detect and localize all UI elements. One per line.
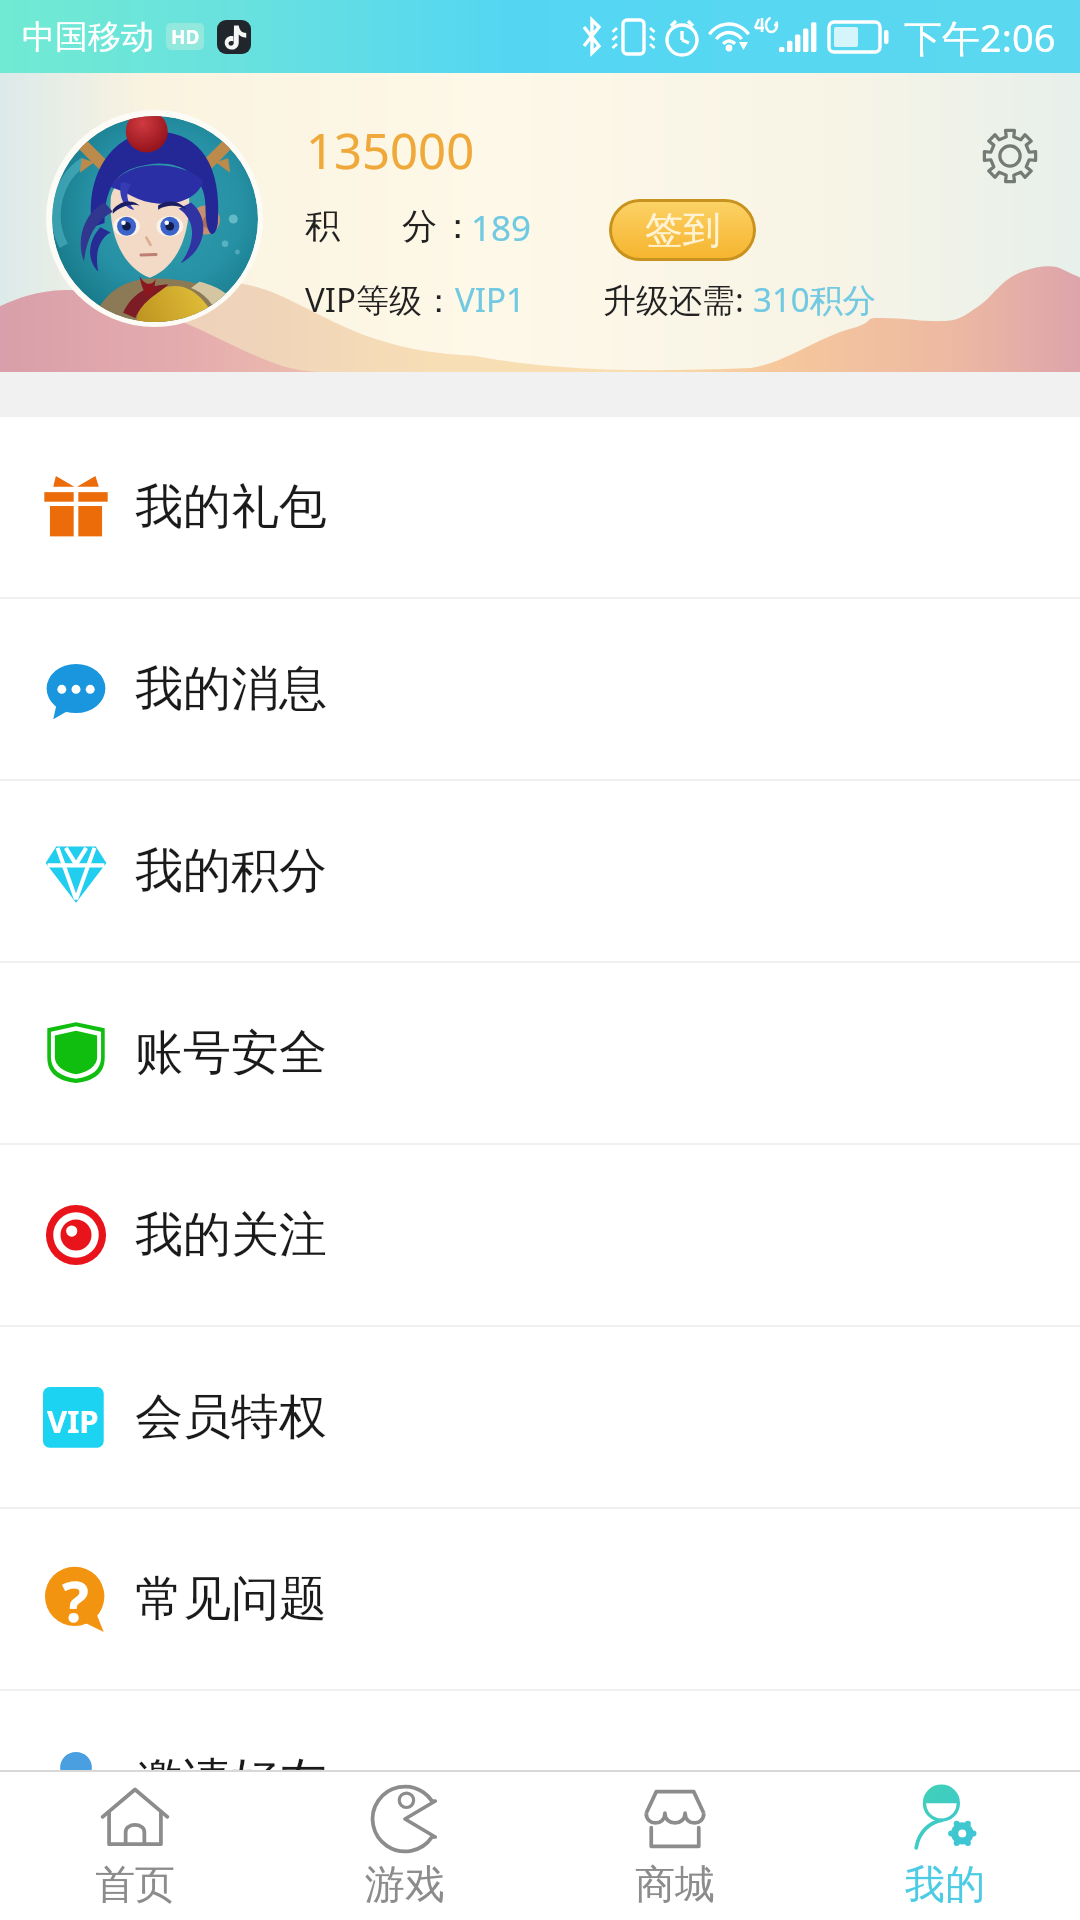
staticText: 下午2:06 <box>904 11 1056 63</box>
button[interactable]: 账号安全 <box>0 963 1080 1143</box>
button[interactable]: ? <box>0 1509 1080 1689</box>
staticText: HD <box>171 24 200 50</box>
staticText: VIP1 <box>455 277 525 322</box>
staticText: 商城 <box>635 1859 715 1909</box>
button[interactable]: 首页 <box>0 1772 270 1920</box>
button[interactable]: Avatar <box>46 110 263 327</box>
staticText: ： <box>440 204 475 248</box>
button[interactable]: Settings <box>974 120 1046 192</box>
button[interactable]: 签到 <box>609 199 756 261</box>
staticText: 会员特权 <box>135 1387 327 1447</box>
staticText: 310积分 <box>753 277 876 322</box>
button[interactable]: 商城 <box>540 1772 810 1920</box>
staticText: VIP <box>47 1400 99 1442</box>
staticText: 我的消息 <box>135 659 327 719</box>
button[interactable]: 游戏 <box>270 1772 540 1920</box>
staticText: 189 <box>471 204 532 252</box>
staticText: ? <box>62 1562 89 1628</box>
button[interactable]: 我的礼包 <box>0 417 1080 597</box>
staticText: 首页 <box>95 1859 175 1909</box>
staticText: 游戏 <box>365 1859 445 1909</box>
staticText: 积 <box>305 204 340 248</box>
staticText: 邀请好友 <box>135 1751 327 1811</box>
button[interactable]: VIP <box>0 1327 1080 1507</box>
staticText: 常见问题 <box>135 1569 327 1629</box>
button[interactable]: 我的消息 <box>0 599 1080 779</box>
staticText: 135000 <box>306 117 475 184</box>
staticText: 我的 <box>905 1859 985 1909</box>
staticText: 账号安全 <box>135 1023 327 1083</box>
button[interactable]: 我的积分 <box>0 781 1080 961</box>
staticText: VIP等级： <box>305 277 455 322</box>
staticText: 中国移动 <box>22 16 154 58</box>
staticText: 升级还需: <box>603 277 753 322</box>
button[interactable]: 我的 <box>810 1772 1080 1920</box>
staticText: 我的积分 <box>135 841 327 901</box>
button[interactable]: 邀请好友 <box>0 1691 1080 1871</box>
staticText: 签到 <box>645 206 721 254</box>
staticText: 分 <box>402 204 437 248</box>
button[interactable]: 我的关注 <box>0 1145 1080 1325</box>
staticText: 我的礼包 <box>135 477 327 537</box>
staticText: 我的关注 <box>135 1205 327 1265</box>
